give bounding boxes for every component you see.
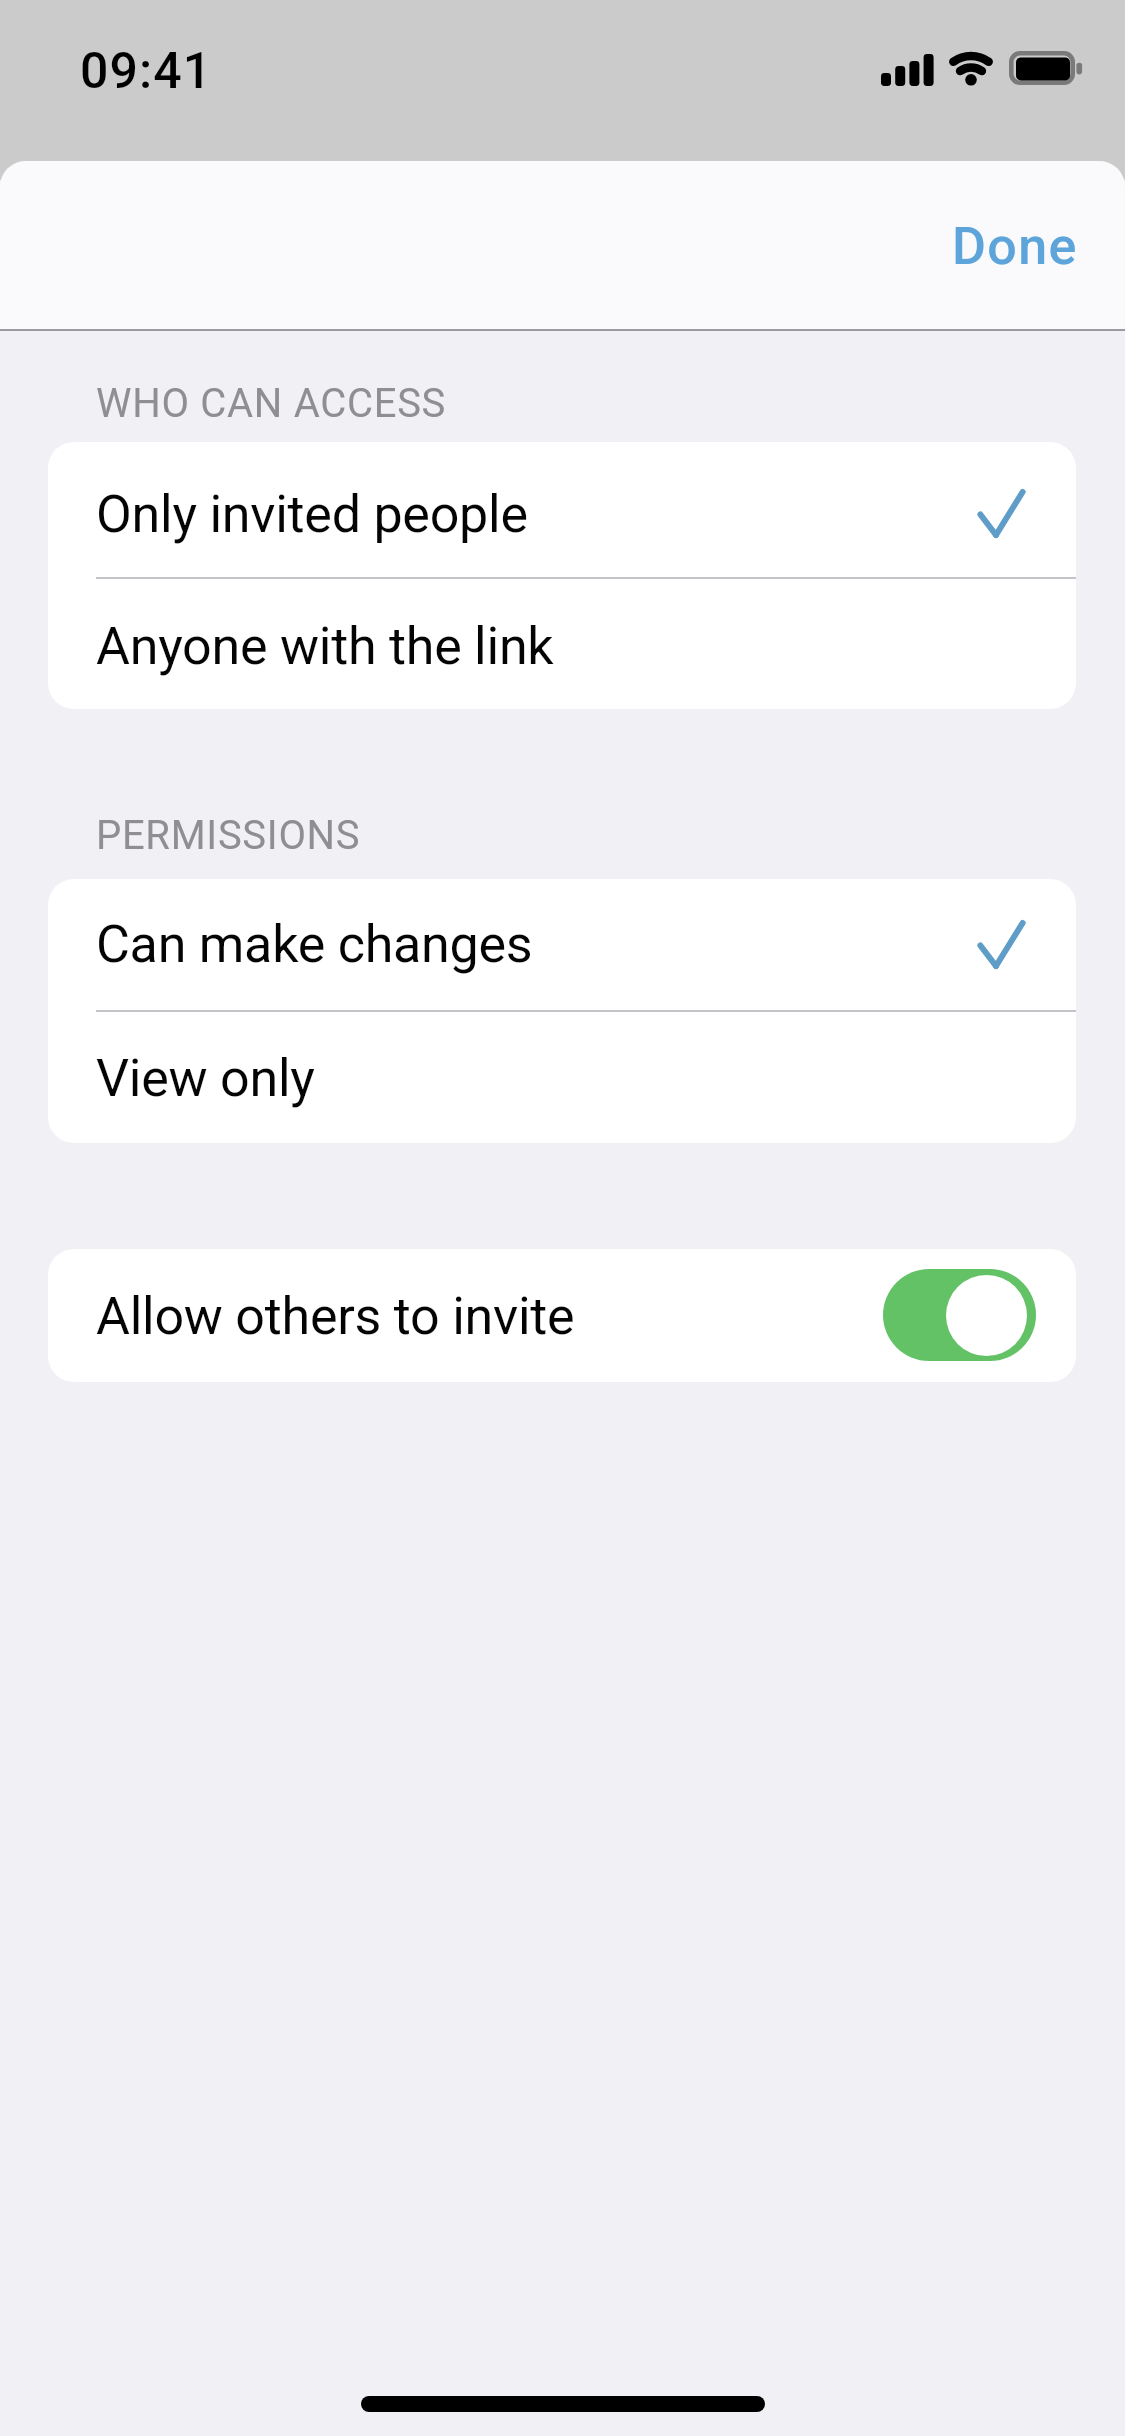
staticText: Allow others to invite	[96, 1286, 575, 1347]
staticText: PERMISSIONS	[96, 812, 361, 859]
button[interactable]: Can make changes	[48, 879, 1076, 1010]
other: Wi-Fi	[944, 44, 998, 88]
staticText: Done	[952, 216, 1078, 277]
staticText: View only	[96, 1048, 315, 1109]
staticText: Only invited people	[96, 484, 528, 545]
button[interactable]: Done	[906, 184, 1125, 308]
other: Home	[361, 2396, 765, 2412]
staticText: Can make changes	[96, 914, 533, 975]
button[interactable]: Anyone with the link	[48, 579, 1076, 709]
other: Cellular signal	[881, 50, 934, 86]
staticText: WHO CAN ACCESS	[96, 380, 447, 427]
button[interactable]: Only invited people	[48, 442, 1076, 577]
staticText: Anyone with the link	[96, 616, 554, 677]
staticText: 09:41	[80, 42, 213, 101]
button[interactable]: Allow others to invite, on	[883, 1269, 1036, 1361]
other: Battery full	[1009, 51, 1083, 86]
button[interactable]: View only	[48, 1012, 1076, 1143]
